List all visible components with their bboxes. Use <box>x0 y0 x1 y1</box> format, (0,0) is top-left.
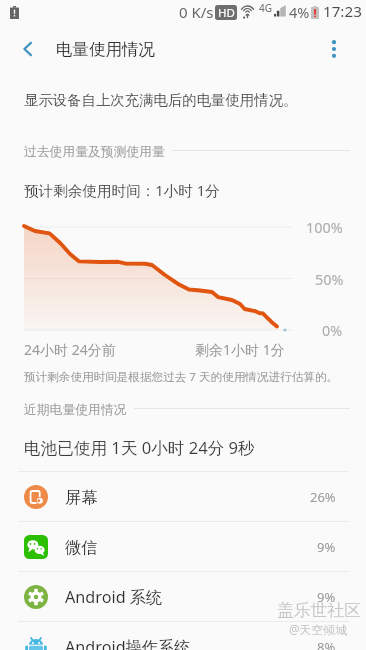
staticText: 预计剩余使用时间是根据您过去 7 天的使用情况进行估算的。 <box>24 369 339 385</box>
staticText: 预计剩余使用时间：1小时 1分 <box>24 180 220 200</box>
staticText: 盖乐世社区 <box>277 600 361 621</box>
staticText: 电量使用情况 <box>56 39 155 60</box>
staticText: 近期电量使用情况 <box>24 402 127 418</box>
staticText: 显示设备自上次充满电后的电量使用情况。 <box>24 91 298 109</box>
button[interactable]: 屏幕 <box>0 472 366 521</box>
staticText: 100% <box>306 218 343 238</box>
button[interactable]: Android操作系统 <box>0 622 366 650</box>
staticText: 0% <box>322 321 343 341</box>
staticText: 4G <box>259 1 272 15</box>
button[interactable]: Android 系统 <box>0 572 366 621</box>
staticText: 0 K/s <box>179 2 214 22</box>
staticText: 26% <box>310 488 336 506</box>
staticText: Android 系统 <box>65 586 163 608</box>
staticText: 24小时 24分前 <box>24 340 116 359</box>
staticText: 电池已使用 1天 0小时 24分 9秒 <box>24 436 255 459</box>
staticText: 剩余1小时 1分 <box>195 340 285 359</box>
staticText: 8% <box>317 638 336 650</box>
staticText: Android操作系统 <box>65 636 191 650</box>
staticText: 微信 <box>65 537 98 557</box>
staticText: @天空倾城 <box>289 621 347 637</box>
staticText: 17:23 <box>323 1 362 22</box>
button[interactable]: Back <box>6 27 50 71</box>
staticText: 9% <box>317 588 336 606</box>
staticText: 9% <box>317 538 336 556</box>
staticText: 过去使用量及预测使用量 <box>24 144 165 160</box>
button[interactable]: More options <box>311 26 357 72</box>
staticText: 4% <box>289 2 310 22</box>
staticText: 屏幕 <box>65 487 98 507</box>
staticText: HD <box>218 5 235 20</box>
button[interactable]: 微信 <box>0 522 366 571</box>
staticText: 50% <box>315 270 344 290</box>
